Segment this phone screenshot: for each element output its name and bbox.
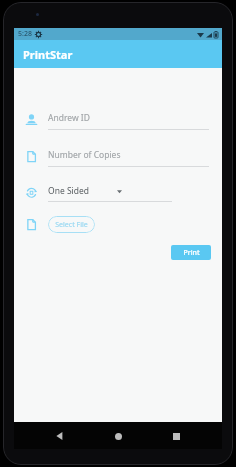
button[interactable]: Select File: [48, 216, 95, 233]
staticText: One Sided: [48, 185, 90, 197]
button[interactable]: Document: [14, 149, 222, 167]
button[interactable]: Back: [48, 424, 72, 448]
staticText: Select File: [55, 220, 88, 230]
other: Sides option: [25, 186, 38, 199]
button[interactable]: Recent apps: [164, 424, 188, 448]
staticText: Number of Copies: [48, 149, 121, 161]
other: Document: [25, 150, 38, 163]
button[interactable]: Home: [106, 424, 130, 448]
staticText: 5:28: [18, 29, 32, 39]
staticText: Andrew ID: [48, 112, 90, 124]
staticText: Print: [183, 248, 200, 258]
button[interactable]: Print: [171, 245, 211, 260]
other: Document: [25, 218, 38, 231]
button[interactable]: Sides option: [14, 185, 222, 202]
staticText: PrintStar: [23, 47, 73, 62]
other: User: [25, 113, 38, 126]
button[interactable]: User: [14, 112, 222, 130]
